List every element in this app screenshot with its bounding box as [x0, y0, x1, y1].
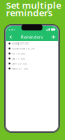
button[interactable]: Mon 21 Oct [6, 66, 58, 71]
staticText: Mon 21 Oct [12, 67, 28, 70]
staticText: Today 09:00 [12, 42, 29, 45]
staticText: reminders [6, 6, 53, 19]
staticText: Tomorrow 14:30 [12, 47, 35, 50]
button[interactable]: Back [8, 34, 13, 39]
staticText: 9:41 [8, 28, 15, 31]
staticText: Reminders [21, 34, 43, 40]
button[interactable]: Sat 19 Oct [6, 56, 58, 61]
staticText: Set multiple [6, 0, 61, 11]
button[interactable]: Tomorrow 14:30 [6, 46, 58, 51]
button[interactable]: Add reminder [51, 34, 56, 39]
button[interactable]: Sun 20 Oct [6, 61, 58, 66]
staticText: Fri 18 Oct [12, 52, 25, 55]
button[interactable]: Fri 18 Oct [6, 51, 58, 56]
button[interactable]: Today 09:00 [6, 41, 58, 46]
staticText: Sat 19 Oct [12, 57, 25, 60]
staticText: Sun 20 Oct [12, 62, 27, 65]
